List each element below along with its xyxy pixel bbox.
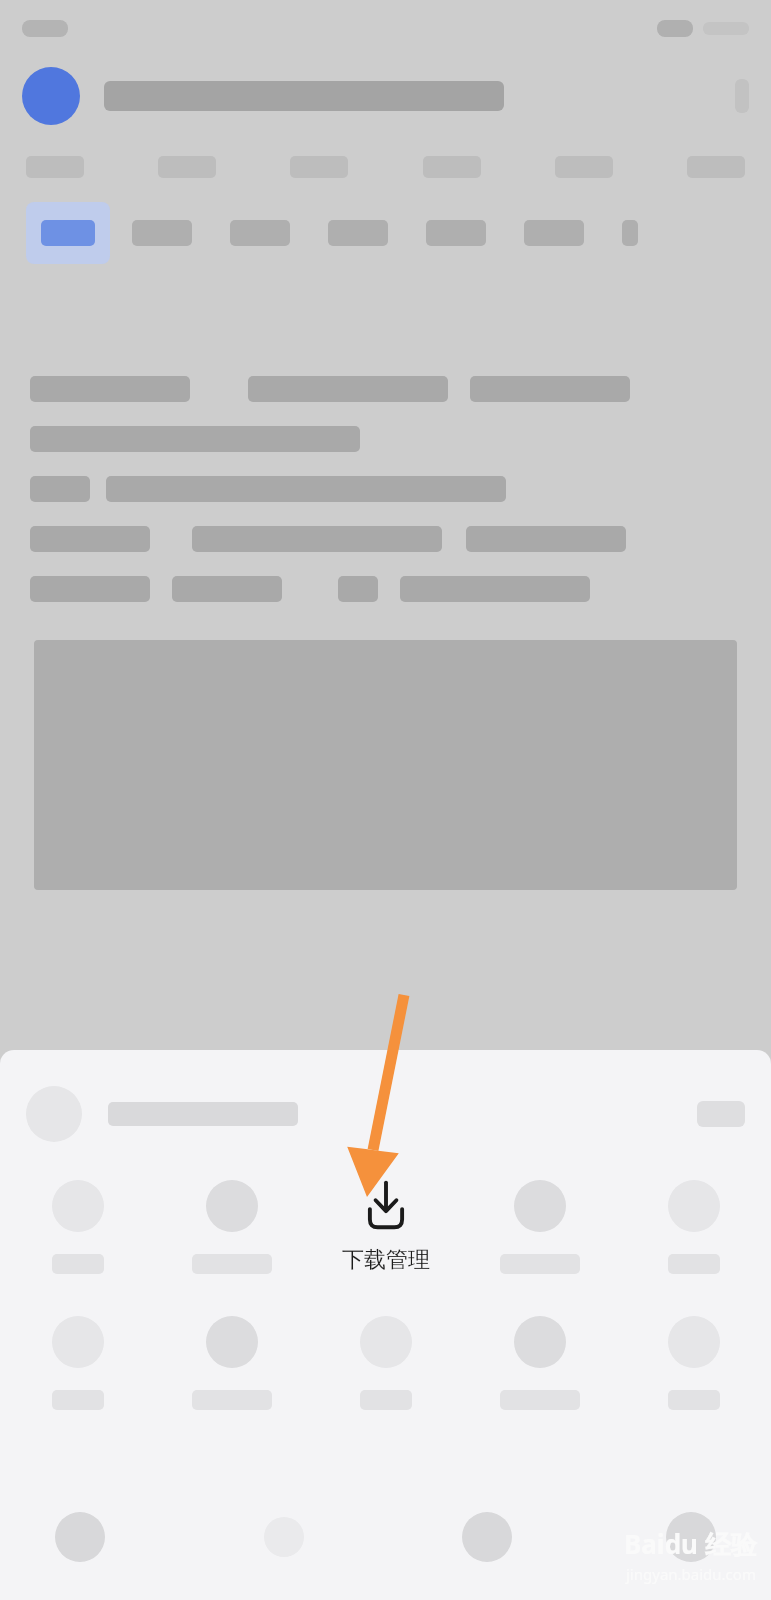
- button[interactable]: Bottom action 1: [34, 1491, 126, 1583]
- button[interactable]: Share option 4: [463, 1168, 617, 1274]
- button[interactable]: 下载管理: [309, 1168, 463, 1274]
- staticText: Baidu 经验: [624, 1526, 757, 1562]
- button[interactable]: Share option 2: [155, 1168, 309, 1274]
- button[interactable]: Bottom action 3: [441, 1491, 533, 1583]
- button[interactable]: Bottom action 4: [645, 1491, 737, 1583]
- button[interactable]: Share option 1: [0, 1168, 155, 1274]
- button[interactable]: Share option 3: [309, 1304, 463, 1410]
- button[interactable]: Selected tab: [26, 202, 110, 264]
- button[interactable]: Account: [22, 67, 80, 125]
- button[interactable]: Share option 4: [463, 1304, 617, 1410]
- button[interactable]: Share option 1: [0, 1304, 155, 1410]
- button[interactable]: Bottom action 2: [238, 1491, 330, 1583]
- button[interactable]: Share option 5: [617, 1168, 771, 1274]
- button[interactable]: Share option 2: [155, 1304, 309, 1410]
- staticText: 下载管理: [342, 1246, 430, 1274]
- button[interactable]: Share option 5: [617, 1304, 771, 1410]
